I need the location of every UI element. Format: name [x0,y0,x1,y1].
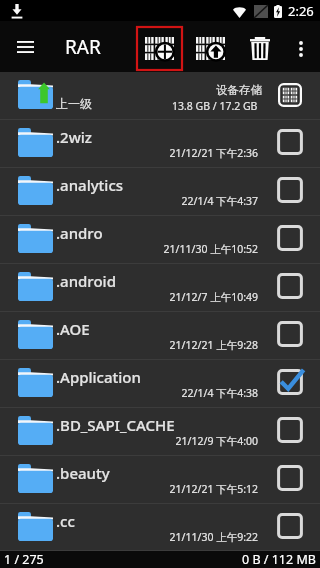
staticText: RAR [65,34,101,60]
button[interactable]: Add to archive [137,27,182,70]
staticText: 2:26 [288,2,314,20]
button[interactable]: .BD_SAPI_CACHE [0,408,320,456]
button[interactable]: .Application [0,360,320,408]
button[interactable]: Not selected [277,273,303,299]
button[interactable]: .AOE [0,312,320,360]
button[interactable]: Not selected [277,177,303,203]
button[interactable]: .2wiz [0,120,320,168]
button[interactable]: Selected [277,369,303,395]
staticText: 21/12/21 上午9:28 [169,338,258,352]
button[interactable]: Switch to grid view [278,83,302,107]
button[interactable]: Not selected [277,417,303,443]
staticText: 21/11/30 上午9:22 [169,530,258,544]
button[interactable]: .analytics [0,168,320,216]
staticText: .analytics [56,175,124,195]
button[interactable]: .beauty [0,456,320,504]
staticText: 13.8 GB / 17.2 GB [172,99,258,113]
button[interactable]: .andro [0,216,320,264]
staticText: .2wiz [56,127,92,147]
button[interactable]: More options [288,30,314,67]
button[interactable]: Not selected [277,465,303,491]
button[interactable]: Not selected [277,225,303,251]
button[interactable]: .cc [0,504,320,551]
button[interactable]: Not selected [277,321,303,347]
staticText: .Application [56,367,141,387]
staticText: .andro [56,223,103,243]
button[interactable]: .android [0,264,320,312]
staticText: 上一级 [56,96,92,111]
staticText: .android [56,271,116,291]
staticText: 设备存储 [216,83,262,97]
button[interactable]: Not selected [277,513,303,539]
staticText: 21/12/21 下午5:12 [169,482,258,496]
staticText: .beauty [56,463,110,483]
staticText: 1 / 275 [4,551,44,568]
button[interactable]: Extract archive [189,27,231,70]
button[interactable]: Not selected [277,129,303,155]
staticText: 21/12/7 上午10:49 [169,290,258,304]
staticText: 22/1/4 下午4:38 [181,386,258,400]
button[interactable]: Open navigation drawer [9,31,41,63]
staticText: 21/11/30 上午10:52 [163,242,258,256]
button[interactable]: Delete [244,30,276,67]
staticText: 22/1/4 下午4:37 [181,194,258,208]
staticText: .AOE [56,319,90,339]
staticText: .cc [56,511,75,531]
staticText: .BD_SAPI_CACHE [56,415,175,435]
staticText: 21/12/9 下午4:00 [175,434,258,448]
staticText: 0 B / 112 MB [242,551,316,568]
staticText: 21/12/21 下午2:36 [169,146,258,160]
button[interactable]: 上一级 [0,72,320,120]
